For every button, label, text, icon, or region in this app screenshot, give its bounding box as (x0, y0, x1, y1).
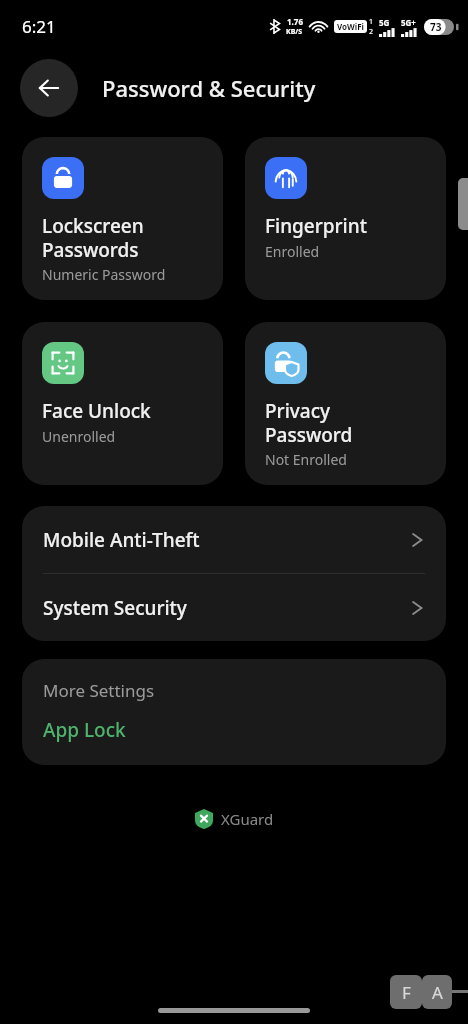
staticText: Lockscreen Passwords (42, 213, 144, 262)
staticText: Face Unlock (42, 398, 151, 424)
button[interactable]: Fingerprint (245, 137, 446, 300)
staticText: More Settings (43, 679, 155, 702)
button[interactable]: Face Unlock (22, 322, 223, 485)
staticText: XGuard (221, 809, 274, 829)
staticText: Fingerprint (265, 213, 367, 239)
staticText: Unenrolled (42, 427, 116, 446)
button[interactable]: Mobile Anti-Theft (22, 506, 446, 573)
staticText: 5G (379, 17, 390, 28)
button[interactable]: System Security (22, 574, 446, 641)
staticText: F (402, 981, 411, 1004)
staticText: 6:21 (22, 15, 56, 38)
staticText: Enrolled (265, 242, 320, 261)
staticText: 1.76 (287, 16, 303, 27)
staticText: 73 (430, 20, 442, 34)
staticText: A (432, 981, 443, 1004)
button[interactable]: Floating assistant (390, 975, 422, 1009)
button[interactable]: Privacy Password (245, 322, 446, 485)
staticText: 2 (369, 27, 374, 37)
staticText: System Security (43, 595, 411, 621)
staticText: 1 (369, 17, 374, 27)
staticText: App Lock (43, 717, 126, 743)
staticText: Not Enrolled (265, 450, 347, 469)
button[interactable]: Back (20, 59, 78, 117)
button[interactable]: App Lock (43, 717, 126, 743)
staticText: VoWiFi (337, 21, 364, 32)
button[interactable]: Lockscreen Passwords (22, 137, 223, 300)
staticText: Privacy Password (265, 398, 353, 447)
staticText: KB/S (286, 27, 303, 37)
staticText: Numeric Password (42, 265, 166, 284)
staticText: Password & Security (102, 73, 316, 103)
staticText: Mobile Anti-Theft (43, 527, 411, 553)
staticText: 5G+ (401, 17, 416, 28)
button[interactable]: A (422, 975, 452, 1009)
